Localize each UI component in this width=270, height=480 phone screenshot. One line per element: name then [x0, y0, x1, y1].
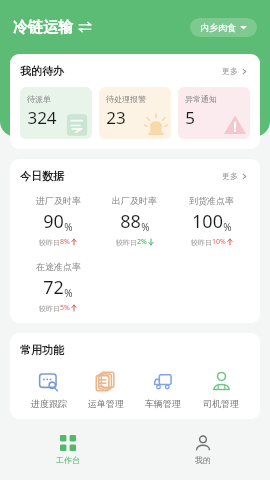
button[interactable]: 内乡肉食	[190, 18, 257, 37]
staticText: 进度跟踪	[31, 398, 67, 409]
staticText: 我的	[195, 455, 211, 465]
button[interactable]: 到货准点率	[173, 195, 250, 247]
button[interactable]: 进厂及时率	[20, 195, 96, 247]
staticText: 出厂及时率	[112, 195, 157, 206]
staticText: 车辆管理	[145, 398, 181, 409]
staticText: 运单管理	[88, 398, 124, 409]
staticText: 待派单	[27, 94, 51, 104]
staticText: 我的待办	[20, 64, 64, 78]
staticText: 待处理报警	[106, 94, 146, 104]
staticText: 10%	[212, 237, 226, 247]
button[interactable]: 出厂及时率	[96, 195, 173, 247]
staticText: 88	[120, 209, 141, 234]
staticText: 5%	[60, 303, 70, 313]
staticText: 冷链运输	[13, 18, 73, 37]
staticText: 23	[106, 106, 126, 129]
staticText: 较昨日	[39, 304, 60, 313]
button[interactable]: 待处理报警	[99, 87, 171, 139]
staticText: 100	[192, 209, 223, 234]
staticText: 324	[27, 106, 57, 129]
staticText: 常用功能	[20, 343, 64, 357]
staticText: 72	[43, 275, 64, 300]
staticText: 更多	[222, 66, 238, 76]
staticText: 较昨日	[116, 238, 137, 247]
staticText: 5	[185, 106, 195, 129]
button[interactable]: 司机管理	[192, 371, 250, 409]
staticText: %	[64, 286, 73, 300]
staticText: %	[223, 220, 232, 234]
button[interactable]: 工作台	[0, 428, 135, 480]
button[interactable]: 车辆管理	[134, 371, 192, 409]
button[interactable]: 进度跟踪	[20, 371, 77, 409]
staticText: %	[64, 220, 73, 234]
staticText: 到货准点率	[189, 195, 234, 206]
button[interactable]: 切换	[78, 20, 92, 34]
button[interactable]: 我的	[135, 428, 270, 480]
staticText: 司机管理	[203, 398, 239, 409]
staticText: 进厂及时率	[36, 195, 81, 206]
button[interactable]: 更多	[220, 169, 250, 183]
button[interactable]: 待派单	[20, 87, 92, 139]
staticText: 工作台	[56, 455, 80, 465]
staticText: 8%	[60, 237, 70, 247]
button[interactable]: 运单管理	[77, 371, 134, 409]
staticText: 在途准点率	[36, 261, 81, 272]
staticText: 内乡肉食	[200, 22, 236, 33]
staticText: 较昨日	[191, 238, 212, 247]
staticText: 异常通知	[185, 94, 217, 104]
staticText: 较昨日	[39, 238, 60, 247]
staticText: 今日数据	[20, 169, 64, 183]
button[interactable]: 更多	[220, 64, 250, 78]
staticText: 90	[43, 209, 64, 234]
button[interactable]: 异常通知	[178, 87, 250, 139]
staticText: %	[141, 220, 150, 234]
staticText: 2%	[137, 237, 147, 247]
button[interactable]: 在途准点率	[20, 261, 96, 313]
staticText: 更多	[222, 171, 238, 181]
